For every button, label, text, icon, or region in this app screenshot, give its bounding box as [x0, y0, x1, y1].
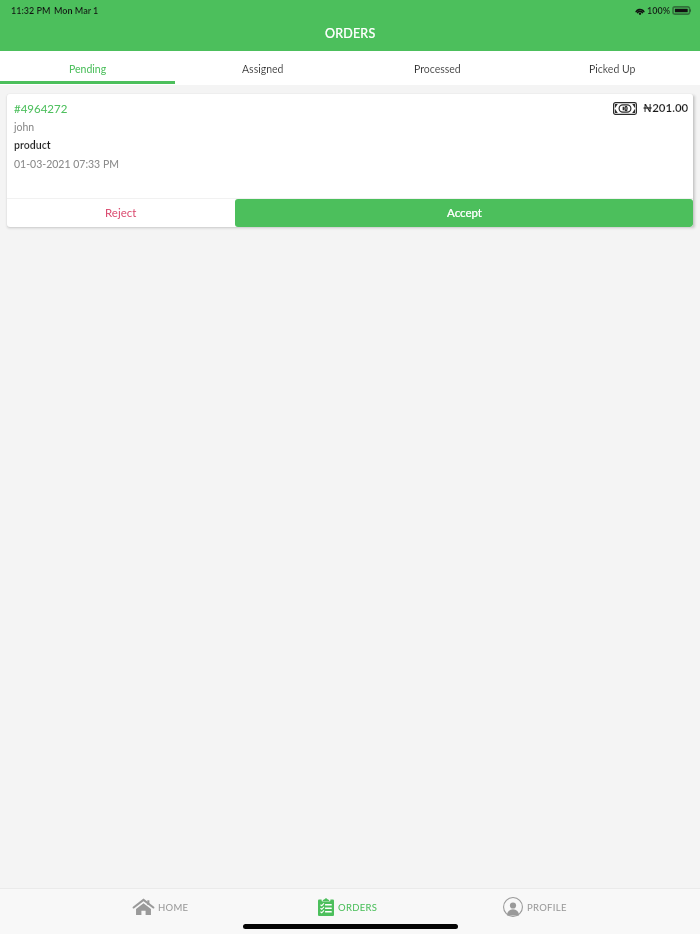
button[interactable]: Profile: [441, 889, 628, 925]
staticText: Reject: [105, 206, 137, 220]
staticText: Processed: [414, 63, 461, 76]
button[interactable]: Orders: [254, 889, 441, 925]
staticText: PROFILE: [527, 902, 567, 913]
staticText: product: [14, 139, 51, 152]
other: Home: [133, 898, 154, 917]
button[interactable]: #4964272: [7, 94, 693, 227]
button[interactable]: Processed: [350, 51, 525, 85]
button[interactable]: Picked Up: [525, 51, 700, 85]
button[interactable]: Accept: [235, 199, 693, 227]
other: Orders: [318, 898, 334, 916]
staticText: Accept: [447, 206, 482, 220]
staticText: HOME: [158, 902, 189, 913]
other: Battery full: [673, 5, 691, 16]
button[interactable]: Assigned: [175, 51, 350, 85]
staticText: Picked Up: [589, 63, 636, 76]
staticText: Pending: [69, 63, 107, 76]
staticText: ORDERS: [338, 902, 378, 913]
button[interactable]: Pending: [0, 51, 175, 85]
other: Wi-Fi: [635, 6, 645, 15]
other: Amount: [613, 102, 637, 115]
staticText: ₦201.00: [643, 101, 689, 115]
staticText: john: [14, 121, 35, 134]
staticText: Assigned: [242, 63, 284, 76]
staticText: ORDERS: [325, 26, 376, 41]
button[interactable]: Reject: [7, 199, 235, 227]
staticText: 01-03-2021 07:33 PM: [14, 158, 119, 171]
staticText: Mon Mar 1: [54, 5, 99, 16]
other: Profile: [503, 897, 523, 917]
staticText: 11:32 PM: [11, 5, 51, 16]
staticText: #4964272: [14, 102, 68, 116]
button[interactable]: Home: [67, 889, 254, 925]
staticText: 100%: [647, 5, 671, 16]
